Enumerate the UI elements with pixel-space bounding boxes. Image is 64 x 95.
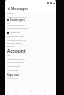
staticText: Free up space bbox=[7, 42, 22, 45]
staticText: Manage account bbox=[7, 58, 25, 61]
button[interactable]: Team sync bbox=[7, 18, 25, 22]
staticText: Details bbox=[7, 45, 15, 48]
staticText: report.pdf bbox=[10, 31, 21, 34]
staticText: New activity today bbox=[7, 16, 27, 19]
staticText: Privacy settings bbox=[7, 61, 24, 64]
staticText: Team sync bbox=[10, 18, 25, 22]
staticText: Today bbox=[7, 11, 14, 14]
button[interactable]: Attachment bbox=[7, 31, 21, 34]
staticText: Storage nearly full bbox=[7, 39, 26, 42]
staticText: Review before noon bbox=[7, 27, 29, 30]
button[interactable]: Recents bbox=[42, 88, 48, 94]
staticText: Linked apps bbox=[7, 65, 20, 68]
staticText: Messages bbox=[11, 6, 29, 11]
button[interactable]: Back bbox=[13, 88, 19, 94]
staticText: Version 2.4 bbox=[7, 77, 19, 80]
staticText: 2h bbox=[7, 22, 10, 25]
button[interactable]: Home bbox=[28, 88, 34, 94]
staticText: Alert rules bbox=[7, 69, 19, 72]
staticText: Scheduled soon bbox=[7, 35, 25, 38]
staticText: On bbox=[7, 54, 10, 57]
button[interactable]: Back bbox=[6, 6, 11, 11]
staticText: Sign out bbox=[7, 73, 19, 77]
staticText: Account bbox=[7, 48, 26, 54]
staticText: New replies wait bbox=[7, 24, 25, 27]
